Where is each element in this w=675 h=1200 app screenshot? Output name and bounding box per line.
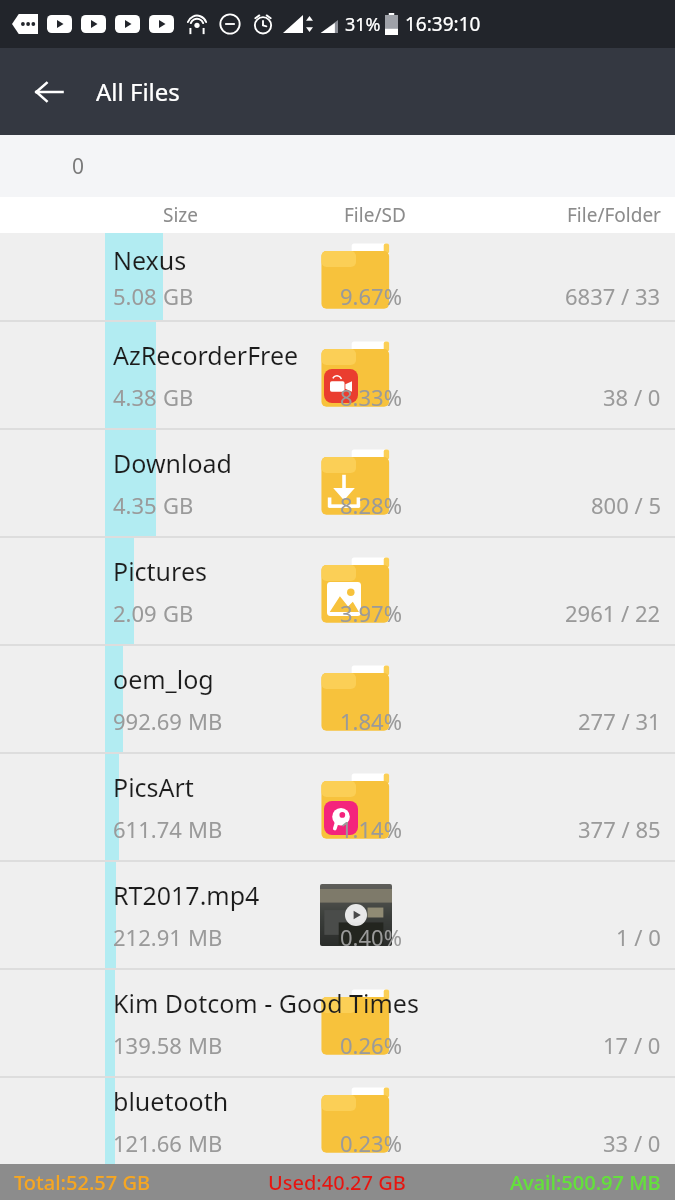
staticText: 33 / 0 — [603, 1128, 661, 1158]
staticText: 3.97% — [340, 598, 402, 628]
staticText: Nexus — [113, 243, 187, 277]
staticText: 6837 / 33 — [565, 281, 661, 311]
staticText: 212.91 — [113, 922, 182, 952]
staticText: Pictures — [113, 554, 207, 588]
staticText: 1.14% — [340, 814, 402, 844]
staticText: File/SD — [344, 202, 406, 228]
staticText: MB — [188, 706, 223, 736]
staticText: File/Folder — [567, 202, 661, 228]
staticText: 17 / 0 — [603, 1030, 661, 1060]
staticText: 9.67% — [340, 281, 402, 311]
staticText: 0.40% — [340, 922, 402, 952]
staticText: 121.66 — [113, 1128, 182, 1158]
staticText: 5.08 — [113, 281, 157, 311]
staticText: GB — [163, 598, 194, 628]
staticText: 377 / 85 — [578, 814, 661, 844]
staticText: bluetooth — [113, 1084, 229, 1118]
staticText: 1 / 0 — [616, 922, 661, 952]
button[interactable]: PicsArt — [0, 754, 675, 860]
staticText: 0.26% — [340, 1030, 402, 1060]
staticText: 4.35 — [113, 490, 157, 520]
staticText: MB — [188, 1128, 223, 1158]
staticText: 0 — [72, 152, 85, 181]
staticText: 992.69 — [113, 706, 182, 736]
staticText: 139.58 — [113, 1030, 182, 1060]
staticText: MB — [188, 1030, 223, 1060]
staticText: 4.38 — [113, 382, 157, 412]
staticText: Kim Dotcom - Good Times — [113, 986, 419, 1020]
staticText: 8.33% — [340, 382, 402, 412]
staticText: 611.74 — [113, 814, 182, 844]
staticText: MB — [188, 814, 223, 844]
staticText: All Files — [96, 75, 180, 108]
staticText: 277 / 31 — [578, 706, 661, 736]
staticText: 8.28% — [340, 490, 402, 520]
button[interactable]: Kim Dotcom - Good Times — [0, 970, 675, 1076]
staticText: RT2017.mp4 — [113, 878, 260, 912]
staticText: 16:39:10 — [405, 11, 481, 37]
staticText: 31% — [345, 12, 381, 37]
staticText: 2.09 — [113, 598, 157, 628]
staticText: oem_log — [113, 662, 214, 696]
button[interactable]: RT2017.mp4 — [0, 862, 675, 968]
staticText: MB — [188, 922, 223, 952]
staticText: Download — [113, 446, 232, 480]
button[interactable]: AzRecorderFree — [0, 322, 675, 428]
staticText: 800 / 5 — [591, 490, 661, 520]
staticText: 2961 / 22 — [565, 598, 661, 628]
button[interactable]: oem_log — [0, 646, 675, 752]
staticText: 38 / 0 — [603, 382, 661, 412]
staticText: 0.23% — [340, 1128, 402, 1158]
staticText: 1.84% — [340, 706, 402, 736]
staticText: GB — [163, 281, 194, 311]
staticText: PicsArt — [113, 770, 194, 804]
button[interactable]: Download — [0, 430, 675, 536]
staticText: Used:40.27 GB — [268, 1169, 406, 1196]
staticText: AzRecorderFree — [113, 338, 299, 372]
staticText: Total:52.57 GB — [14, 1169, 151, 1196]
staticText: GB — [163, 490, 194, 520]
button[interactable]: Nexus — [0, 233, 675, 320]
staticText: Avail:500.97 MB — [510, 1169, 661, 1196]
button[interactable]: Back — [18, 61, 80, 123]
staticText: GB — [163, 382, 194, 412]
button[interactable]: Pictures — [0, 538, 675, 644]
staticText: Size — [163, 202, 198, 228]
button[interactable]: bluetooth — [0, 1078, 675, 1164]
